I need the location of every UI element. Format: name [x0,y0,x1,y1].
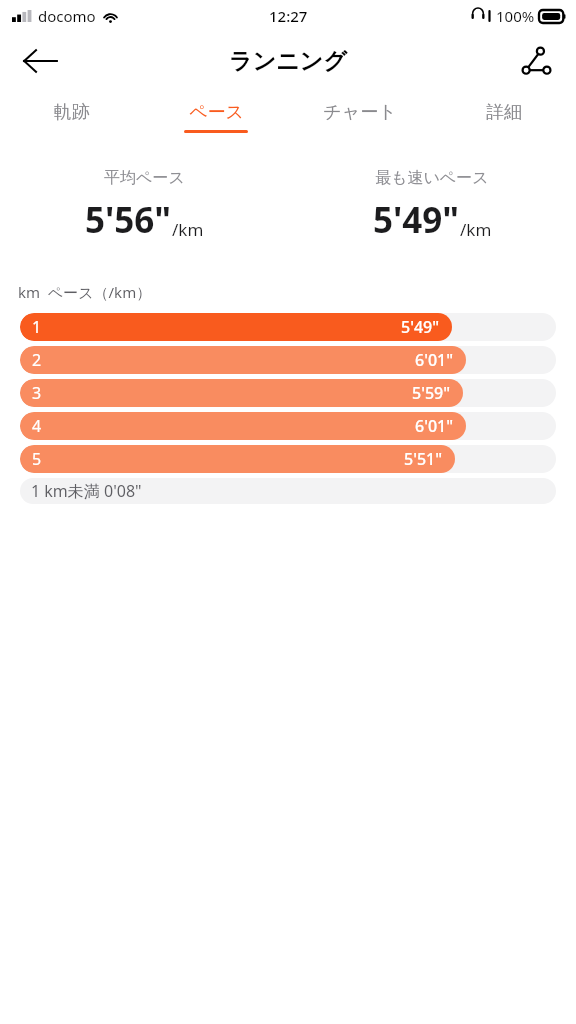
button[interactable]: Back [14,35,66,87]
button[interactable]: 3 [20,379,556,407]
staticText: 12:27 [269,6,308,26]
staticText: 5'49" [401,316,440,338]
button[interactable]: チャート [288,90,432,144]
staticText: 6'01" [415,349,454,371]
button[interactable]: 詳細 [432,90,576,144]
staticText: ランニング [229,47,347,76]
staticText: /km [172,218,204,241]
staticText: 1 km未満 0'08" [31,480,142,502]
button[interactable]: Share route [510,35,562,87]
staticText: 5 [32,448,42,470]
staticText: 4 [32,415,42,437]
staticText: ペース [189,101,244,124]
staticText: 2 [32,349,42,371]
button[interactable]: 軌跡 [0,90,144,144]
button[interactable]: 1 km未満 0'08" [20,478,556,504]
button[interactable]: ペース [144,90,288,144]
button[interactable]: 4 [20,412,556,440]
staticText: 最も速いペース [375,168,489,188]
staticText: 1 [32,316,42,338]
staticText: 6'01" [415,415,454,437]
staticText: 5'59" [412,382,451,404]
staticText: 5'51" [404,448,443,470]
button[interactable]: 5 [20,445,556,473]
staticText: 詳細 [486,101,522,124]
staticText: 3 [32,382,42,404]
staticText: docomo [38,6,96,26]
staticText: /km [460,218,492,241]
button[interactable]: 1 [20,313,556,341]
staticText: km ペース（/km） [18,282,152,302]
button[interactable]: 2 [20,346,556,374]
staticText: 100% [496,6,535,26]
staticText: 5'49" [373,196,460,244]
staticText: チャート [323,101,397,124]
staticText: 5'56" [85,196,172,244]
staticText: 軌跡 [54,101,90,124]
staticText: 平均ペース [104,168,185,188]
